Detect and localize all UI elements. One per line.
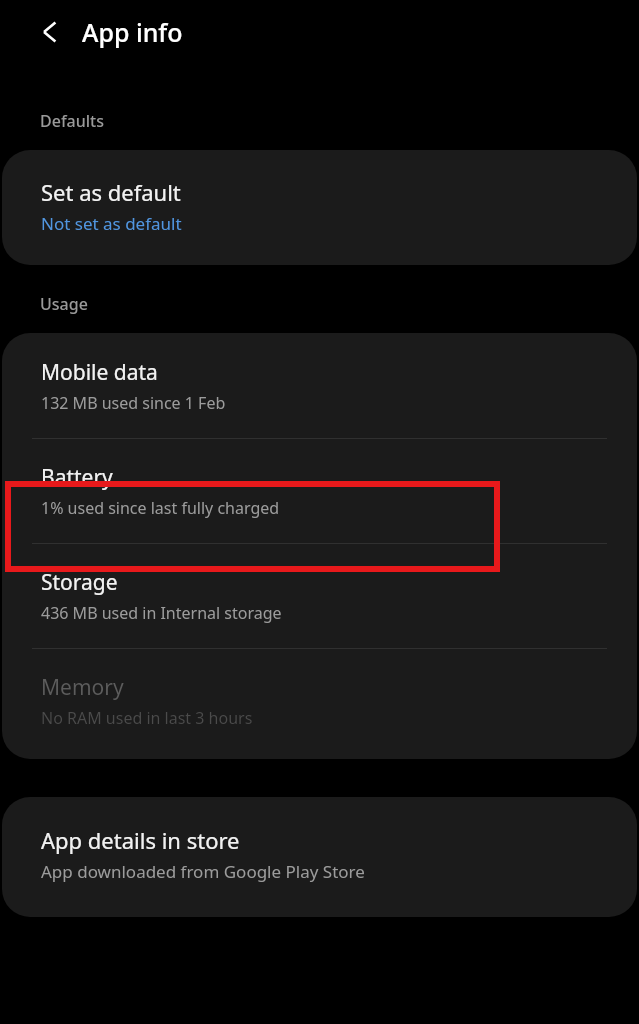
staticText: 132 MB used since 1 Feb: [41, 392, 226, 414]
staticText: Memory: [41, 673, 124, 702]
button[interactable]: App details in store: [2, 797, 637, 917]
button[interactable]: Storage: [2, 544, 637, 648]
button[interactable]: Battery: [2, 439, 637, 543]
staticText: App downloaded from Google Play Store: [41, 860, 365, 883]
staticText: Mobile data: [41, 358, 158, 387]
button[interactable]: Mobile data: [2, 333, 637, 438]
staticText: Battery: [41, 463, 113, 492]
staticText: Set as default: [41, 177, 181, 207]
staticText: 1% used since last fully charged: [41, 497, 280, 519]
staticText: No RAM used in last 3 hours: [41, 707, 253, 729]
staticText: Defaults: [40, 110, 105, 132]
staticText: 436 MB used in Internal storage: [41, 602, 282, 624]
staticText: Storage: [41, 568, 118, 597]
staticText: Not set as default: [41, 212, 182, 235]
button[interactable]: Set as default: [2, 150, 637, 265]
button[interactable]: Memory: [2, 649, 637, 759]
staticText: App details in store: [41, 825, 240, 855]
button[interactable]: Back: [24, 6, 76, 58]
staticText: Usage: [40, 293, 88, 315]
staticText: App info: [82, 15, 183, 49]
